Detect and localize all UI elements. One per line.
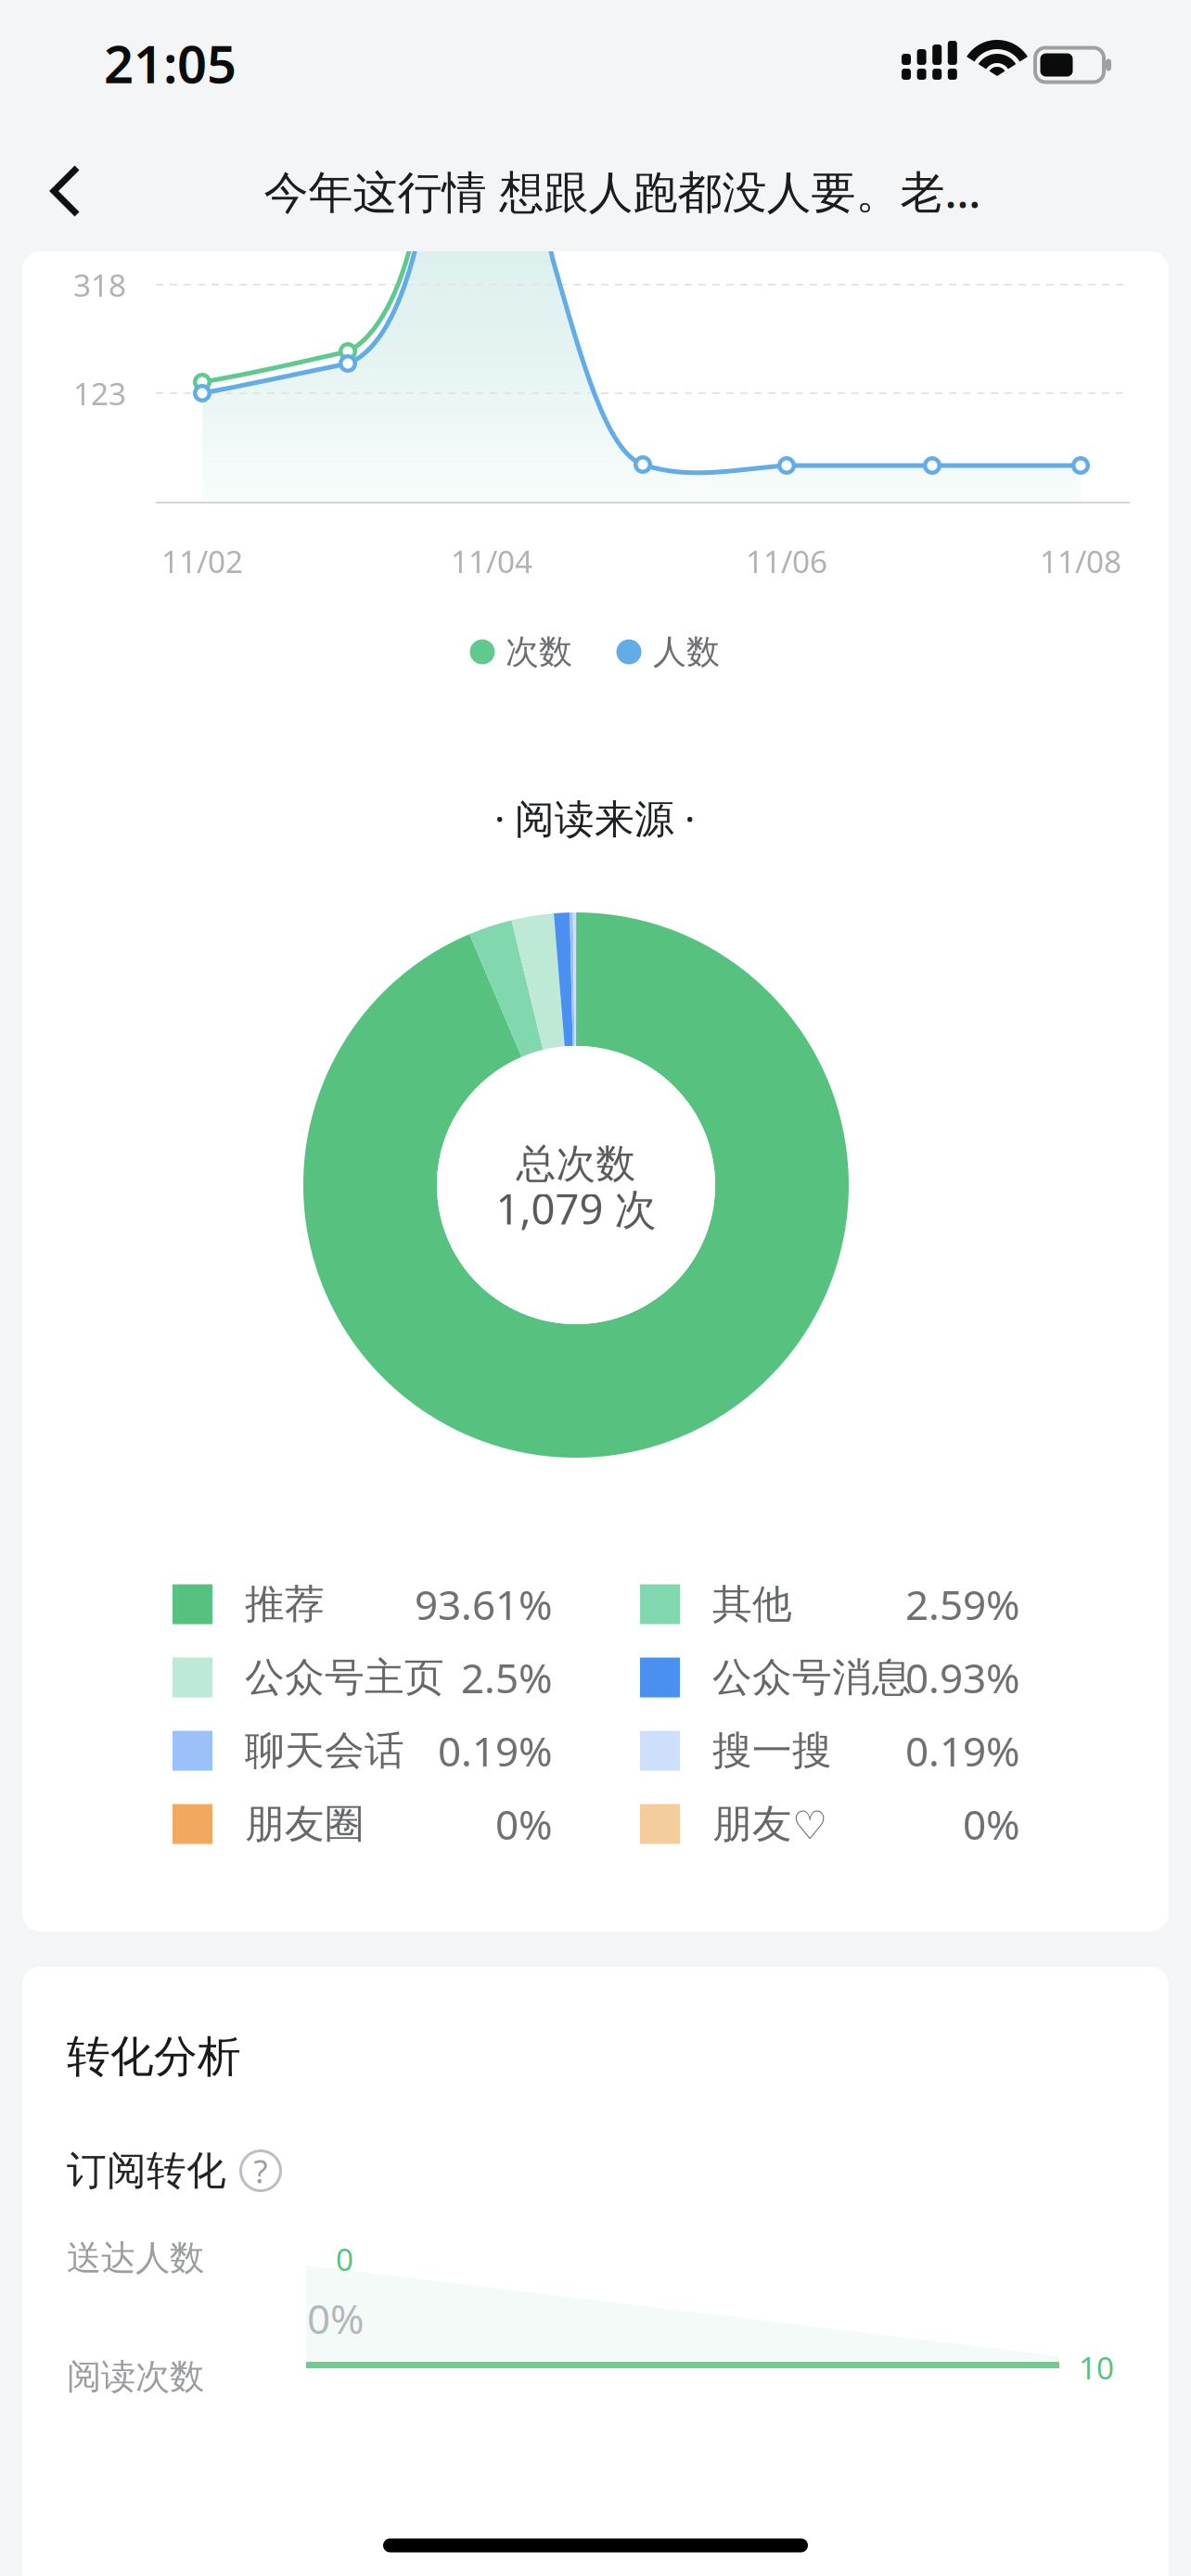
- staticText: 11/08: [1040, 541, 1121, 582]
- button[interactable]: 朋友♡: [640, 1795, 1020, 1853]
- staticText: 聊天会话: [245, 1726, 404, 1775]
- staticText: 0.19%: [905, 1724, 1020, 1778]
- staticText: 1,079 次: [496, 1180, 656, 1236]
- staticText: 搜一搜: [712, 1726, 832, 1775]
- button[interactable]: 推荐: [173, 1575, 553, 1633]
- staticText: 10: [1079, 2347, 1114, 2388]
- staticText: 123: [73, 373, 126, 414]
- staticText: 0%: [307, 2291, 365, 2345]
- staticText: 朋友♡: [712, 1800, 827, 1848]
- staticText: 93.61%: [415, 1577, 553, 1631]
- button[interactable]: Back: [19, 150, 122, 232]
- button[interactable]: 公众号主页: [173, 1649, 553, 1706]
- staticText: ?: [254, 2149, 268, 2192]
- staticText: 人数: [653, 631, 720, 672]
- staticText: 2.59%: [905, 1577, 1020, 1631]
- staticText: 推荐: [245, 1580, 325, 1628]
- staticText: 公众号消息: [712, 1653, 912, 1702]
- staticText: 11/02: [161, 541, 243, 582]
- button[interactable]: 公众号消息: [640, 1649, 1020, 1706]
- staticText: 送达人数: [67, 2237, 204, 2279]
- button[interactable]: 搜一搜: [640, 1722, 1020, 1779]
- staticText: 0%: [495, 1797, 553, 1851]
- staticText: 21:05: [104, 29, 237, 98]
- button[interactable]: 朋友圈: [173, 1795, 553, 1853]
- staticText: 11/04: [451, 541, 532, 582]
- staticText: 总次数: [516, 1139, 636, 1188]
- button[interactable]: Help: [235, 2145, 287, 2197]
- staticText: 公众号主页: [245, 1653, 444, 1702]
- staticText: 阅读次数: [67, 2355, 204, 2398]
- staticText: · 阅读来源 ·: [494, 792, 695, 844]
- button[interactable]: 其他: [640, 1575, 1020, 1633]
- staticText: 次数: [506, 631, 572, 672]
- staticText: 0%: [963, 1797, 1020, 1851]
- staticText: 转化分析: [67, 2030, 241, 2083]
- staticText: 其他: [712, 1580, 792, 1628]
- staticText: 318: [73, 264, 126, 305]
- staticText: 0.93%: [905, 1650, 1020, 1705]
- staticText: 订阅转化: [67, 2146, 226, 2195]
- staticText: 0: [336, 2238, 353, 2279]
- staticText: 11/06: [746, 541, 827, 582]
- staticText: 0.19%: [438, 1724, 553, 1778]
- staticText: 今年这行情 想跟人跑都没人要。老…: [264, 161, 981, 221]
- staticText: 2.5%: [461, 1650, 553, 1705]
- button[interactable]: 聊天会话: [173, 1722, 553, 1779]
- staticText: 朋友圈: [245, 1800, 365, 1848]
